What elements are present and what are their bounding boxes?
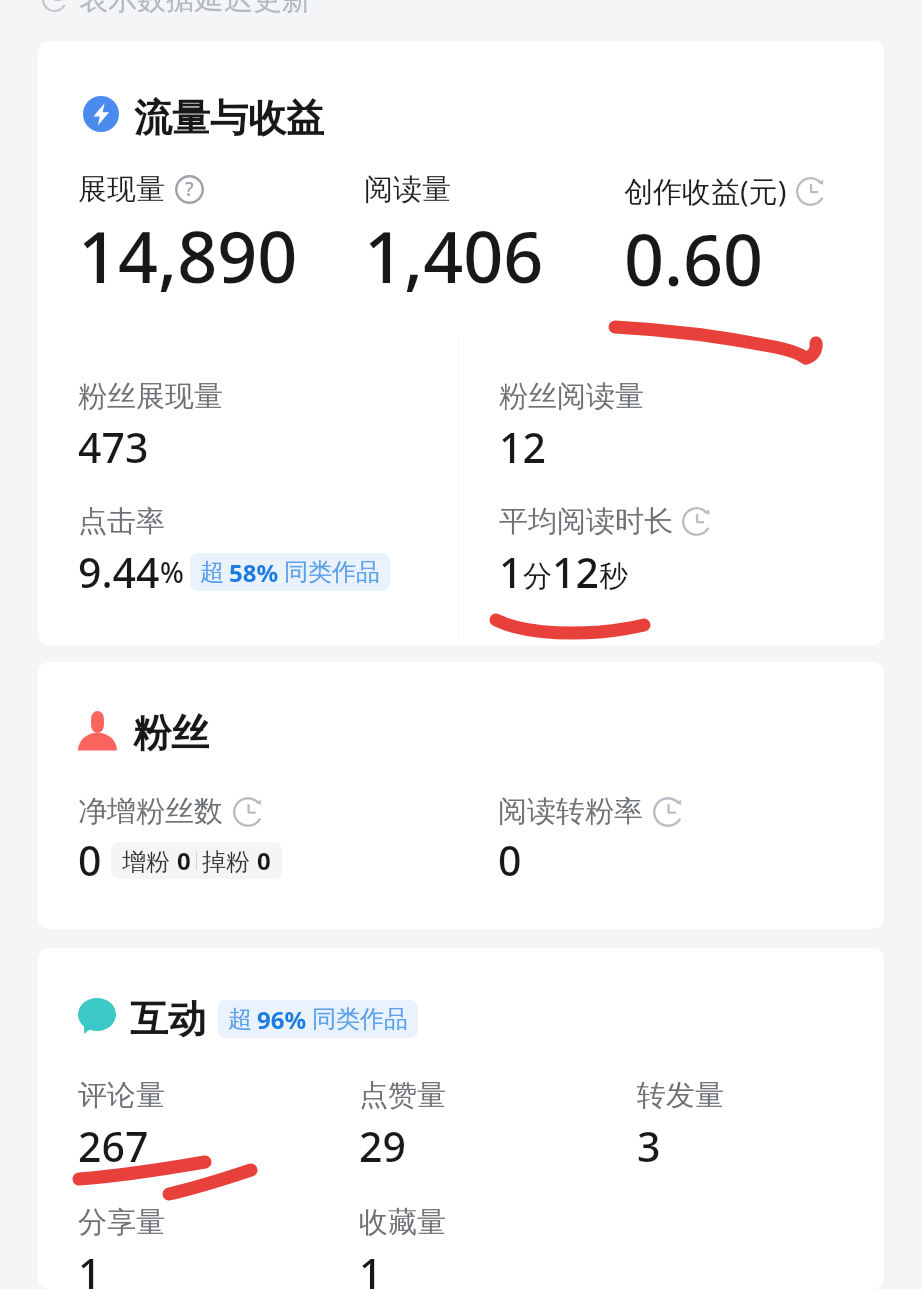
button[interactable]: 互动 bbox=[78, 995, 206, 1043]
staticText: 473 bbox=[78, 419, 149, 475]
staticText: 1 bbox=[499, 544, 523, 600]
staticText: 12 bbox=[499, 419, 546, 475]
staticText: 秒 bbox=[599, 558, 628, 595]
staticText: 展现量 bbox=[78, 171, 165, 208]
staticText: 点击率 bbox=[78, 503, 165, 540]
button[interactable]: 流量与收益 bbox=[83, 94, 324, 142]
staticText: 超 bbox=[228, 1004, 252, 1034]
staticText: 1 bbox=[78, 1245, 102, 1289]
staticText: 阅读量 bbox=[364, 171, 451, 208]
staticText: 58% bbox=[229, 556, 279, 589]
staticText: 创作收益(元) bbox=[624, 171, 787, 211]
staticText: 3 bbox=[637, 1118, 661, 1174]
staticText: 收藏量 bbox=[359, 1204, 446, 1241]
staticText: 粉丝展现量 bbox=[78, 378, 223, 415]
staticText: 平均阅读时长 bbox=[499, 503, 673, 540]
staticText: 1,406 bbox=[364, 208, 544, 303]
other: Annotations bbox=[0, 0, 922, 1289]
staticText: 增粉 bbox=[122, 844, 177, 877]
staticText: 表示数据延迟更新 bbox=[79, 0, 311, 18]
staticText: 29 bbox=[359, 1118, 406, 1174]
staticText: 转发量 bbox=[637, 1077, 724, 1114]
button[interactable]: 粉丝 bbox=[78, 709, 209, 757]
staticText: 超 bbox=[200, 557, 224, 587]
staticText: 0 bbox=[498, 832, 522, 888]
staticText: 同类作品 bbox=[284, 557, 380, 587]
staticText: 阅读转粉率 bbox=[498, 793, 643, 830]
button[interactable]: 超 bbox=[218, 1000, 418, 1038]
staticText: 1 bbox=[359, 1245, 383, 1289]
staticText: 粉丝阅读量 bbox=[499, 378, 644, 415]
staticText: 96% bbox=[257, 1003, 307, 1036]
button[interactable]: 超 bbox=[190, 553, 390, 591]
staticText: 掉粉 bbox=[202, 844, 257, 877]
staticText: 互动 bbox=[130, 995, 206, 1043]
staticText: 12 bbox=[552, 544, 599, 600]
button[interactable]: 增粉 bbox=[111, 842, 282, 879]
staticText: ? bbox=[185, 176, 194, 202]
staticText: 评论量 bbox=[78, 1077, 165, 1114]
staticText: 14,890 bbox=[78, 208, 298, 303]
staticText: 0.60 bbox=[624, 211, 764, 306]
staticText: 点赞量 bbox=[359, 1077, 446, 1114]
staticText: 分 bbox=[523, 558, 552, 595]
staticText: 流量与收益 bbox=[134, 94, 324, 142]
staticText: 粉丝 bbox=[133, 709, 209, 757]
staticText: 9.44 bbox=[78, 544, 160, 600]
staticText: 0 bbox=[257, 844, 271, 877]
staticText: 267 bbox=[78, 1118, 149, 1174]
staticText: 分享量 bbox=[78, 1204, 165, 1241]
staticText: 0 bbox=[78, 832, 102, 888]
staticText: 0 bbox=[177, 844, 191, 877]
staticText: 同类作品 bbox=[312, 1004, 408, 1034]
staticText: 净增粉丝数 bbox=[78, 793, 223, 830]
staticText: % bbox=[160, 553, 184, 591]
